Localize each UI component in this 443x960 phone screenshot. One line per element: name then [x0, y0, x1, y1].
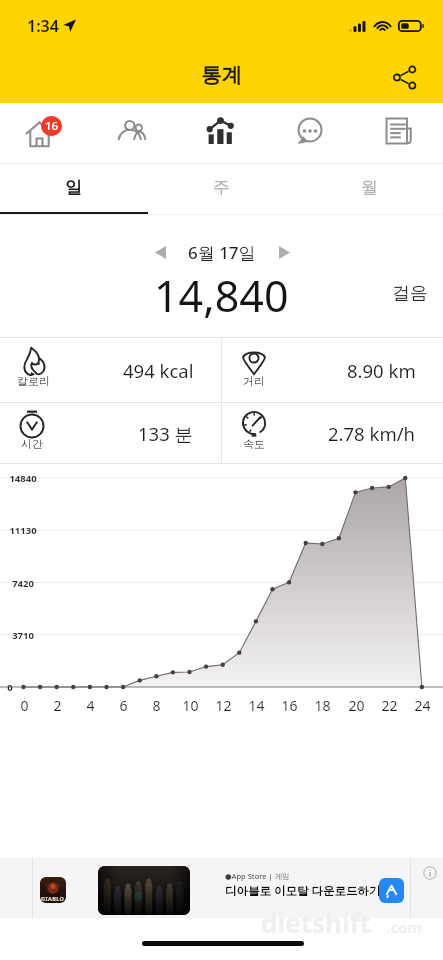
button[interactable]: Next day	[266, 234, 302, 270]
staticText: 18	[314, 696, 331, 715]
staticText: i	[429, 868, 432, 879]
button[interactable]: DIABLO	[0, 858, 443, 918]
button[interactable]: 주	[147, 164, 295, 215]
button[interactable]: News	[354, 101, 443, 161]
staticText: 2.78 km/h	[328, 421, 416, 446]
staticText: 0	[7, 681, 13, 694]
staticText: 통계	[201, 62, 242, 88]
button[interactable]: Ad information	[423, 866, 437, 880]
button[interactable]: 속도	[222, 403, 443, 463]
button[interactable]: 거리	[222, 338, 443, 402]
staticText: 속도	[243, 437, 265, 451]
staticText: 12	[215, 696, 232, 715]
staticText: 주	[213, 177, 230, 198]
staticText: 20	[348, 696, 365, 715]
staticText: 22	[381, 696, 398, 715]
staticText: 걸음	[392, 282, 428, 305]
staticText: 494 kcal	[123, 358, 194, 383]
button[interactable]: 시간	[0, 403, 221, 463]
staticText: 16	[45, 118, 59, 134]
staticText: 일	[65, 177, 82, 198]
staticText: 4	[86, 696, 95, 715]
staticText: 디아블로 이모탈 다운로드하기	[225, 883, 381, 899]
staticText: 24	[414, 696, 431, 715]
button[interactable]: Share	[383, 56, 425, 98]
staticText: 6월 17일	[188, 241, 256, 264]
staticText: 16	[281, 696, 298, 715]
staticText: 6	[119, 696, 128, 715]
staticText: ●App Store | 게임	[225, 871, 290, 881]
staticText: 8	[152, 696, 161, 715]
staticText: dietshift	[261, 905, 372, 940]
button[interactable]: 월	[295, 164, 443, 215]
staticText: 거리	[243, 374, 265, 388]
button[interactable]: Open App Store	[379, 878, 404, 903]
staticText: 1:34	[27, 15, 59, 37]
button[interactable]: 일	[0, 164, 147, 215]
staticText: 3710	[12, 629, 34, 642]
button[interactable]: 칼로리	[0, 338, 221, 402]
staticText: 133 분	[138, 421, 194, 446]
staticText: 10	[182, 696, 199, 715]
staticText: 11130	[9, 524, 37, 537]
staticText: 0	[20, 696, 29, 715]
staticText: 7420	[12, 577, 34, 590]
button[interactable]: Friends	[88, 101, 176, 161]
staticText: 2	[53, 696, 62, 715]
staticText: 14	[248, 696, 265, 715]
button[interactable]: Home	[0, 101, 88, 161]
staticText: DIABLO	[41, 895, 65, 902]
staticText: 8.90 km	[347, 358, 416, 383]
button[interactable]: Chat	[265, 101, 354, 161]
staticText: 시간	[21, 437, 43, 451]
staticText: 14840	[9, 472, 37, 485]
staticText: 14,840	[154, 266, 289, 318]
button[interactable]: Statistics	[176, 101, 265, 161]
button[interactable]: Previous day	[142, 234, 178, 270]
staticText: 칼로리	[17, 374, 50, 388]
staticText: 월	[361, 177, 378, 198]
staticText: .com	[386, 917, 422, 937]
